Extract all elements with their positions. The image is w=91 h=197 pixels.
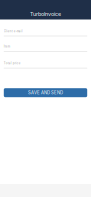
staticText: SAVE AND SEND (28, 90, 63, 95)
staticText: TurboInvoice (30, 11, 61, 17)
button[interactable]: SAVE AND SEND (4, 88, 87, 97)
staticText: Client e-mail (4, 29, 23, 33)
staticText: Item (4, 45, 10, 48)
staticText: Total price (4, 62, 21, 65)
